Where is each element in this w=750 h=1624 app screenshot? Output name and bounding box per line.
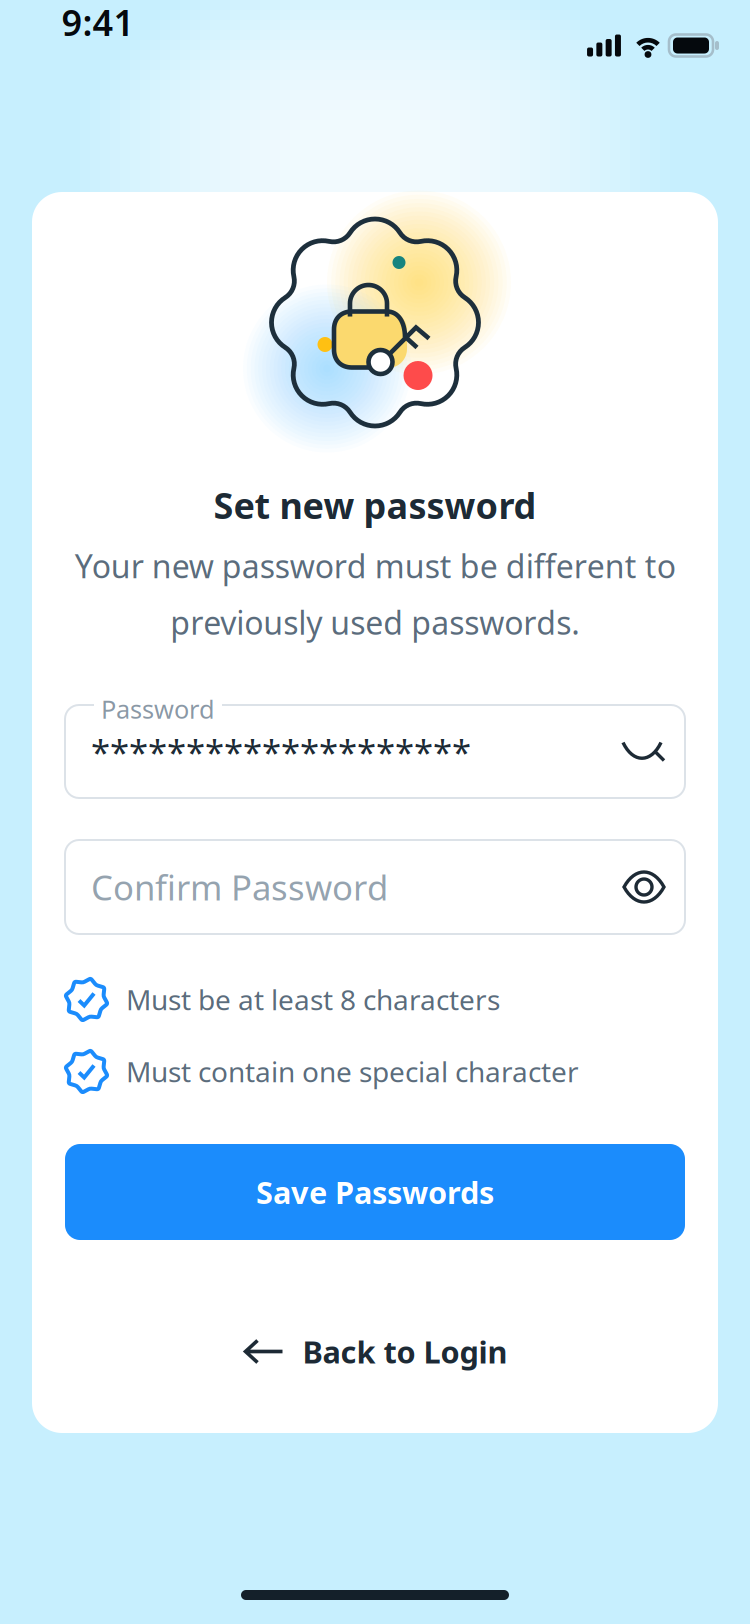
staticText: Set new password	[213, 481, 536, 529]
button[interactable]: Save Passwords	[65, 1144, 685, 1240]
staticText: Back to Login	[302, 1331, 507, 1372]
staticText: Confirm Password	[91, 864, 388, 910]
staticText: Must be at least 8 characters	[126, 981, 500, 1018]
button[interactable]: Back to Login	[218, 1317, 531, 1386]
staticText: Password	[101, 692, 215, 726]
staticText: Your new password must be different to p…	[74, 544, 675, 643]
button[interactable]: Hide password	[621, 737, 667, 765]
staticText: 9:41	[61, 0, 134, 46]
button[interactable]: Show password	[621, 870, 667, 904]
staticText: Save Passwords	[256, 1172, 494, 1212]
staticText: Must contain one special character	[126, 1053, 579, 1090]
staticText: ********************	[91, 728, 471, 774]
